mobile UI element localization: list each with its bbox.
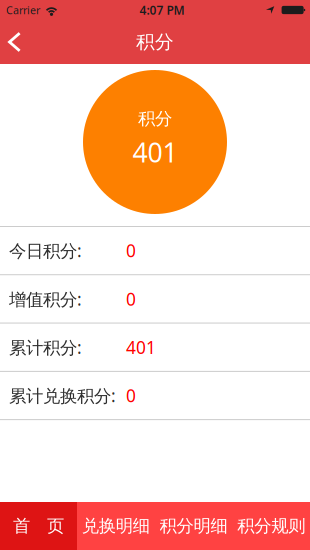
staticText: 0 [126, 239, 136, 262]
staticText: Carrier [6, 3, 40, 17]
button[interactable]: 积分规则 [232, 502, 310, 550]
staticText: 今日积分: [9, 239, 82, 262]
staticText: 积分 [136, 30, 174, 53]
staticText: 0 [126, 287, 136, 310]
staticText: 0 [126, 384, 136, 407]
staticText: 累计积分: [9, 336, 82, 359]
staticText: 4:07 PM [139, 2, 184, 18]
staticText: 累计兑换积分: [9, 384, 116, 407]
button[interactable]: Back [0, 20, 48, 64]
button[interactable]: 兑换明细 [77, 502, 155, 550]
button[interactable]: 首 [0, 502, 77, 550]
staticText: 页 [47, 515, 64, 537]
staticText: 积分 [138, 108, 172, 129]
staticText: 积分明细 [159, 515, 227, 537]
staticText: 兑换明细 [82, 515, 150, 537]
staticText: 增值积分: [9, 287, 82, 310]
staticText: 401 [132, 134, 177, 170]
button[interactable]: 积分明细 [155, 502, 232, 550]
staticText: 401 [126, 336, 156, 359]
staticText: 积分规则 [237, 515, 305, 537]
staticText: 首 [13, 515, 30, 537]
